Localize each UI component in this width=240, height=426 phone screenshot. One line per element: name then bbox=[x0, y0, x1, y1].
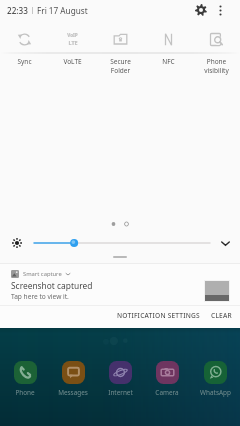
button[interactable]: Settings bbox=[191, 0, 211, 20]
staticText: Tap here to view it. bbox=[11, 292, 69, 301]
button[interactable]: Drag handle bbox=[113, 256, 127, 258]
button[interactable]: Phone bbox=[3, 361, 47, 397]
staticText: Smart capture bbox=[23, 270, 62, 278]
staticText: Phone bbox=[15, 388, 35, 397]
staticText: Phone visibility bbox=[204, 57, 229, 75]
button[interactable]: Sync bbox=[0, 29, 48, 49]
button[interactable]: Brightness slider bbox=[34, 235, 210, 251]
staticText: CLEAR bbox=[211, 311, 232, 320]
staticText: VoLTE bbox=[63, 57, 82, 66]
staticText: 22:33 bbox=[7, 5, 28, 16]
button[interactable]: NOTIFICATION SETTINGS bbox=[113, 308, 204, 323]
staticText: NOTIFICATION SETTINGS bbox=[117, 311, 200, 320]
staticText: Internet bbox=[108, 388, 133, 397]
staticText: Screenshot captured bbox=[11, 280, 93, 291]
staticText: Camera bbox=[155, 388, 179, 397]
staticText: VoIP bbox=[67, 32, 78, 38]
button[interactable]: NFC bbox=[144, 29, 192, 49]
staticText: Fri 17 August bbox=[37, 5, 88, 16]
staticText: WhatsApp bbox=[200, 388, 231, 397]
button[interactable]: VoLTE bbox=[48, 29, 96, 49]
button[interactable]: More options bbox=[211, 1, 229, 19]
button[interactable]: Brightness bbox=[0, 235, 34, 251]
staticText: Secure Folder bbox=[110, 57, 131, 75]
button[interactable]: CLEAR bbox=[207, 308, 236, 323]
staticText: LTE bbox=[68, 39, 78, 46]
button[interactable]: Messages bbox=[51, 361, 95, 397]
button[interactable]: Expand quick settings bbox=[210, 235, 240, 251]
button[interactable]: Phone visibility bbox=[192, 29, 240, 49]
button[interactable]: Internet bbox=[98, 361, 142, 397]
button[interactable]: Camera bbox=[145, 361, 189, 397]
button[interactable]: WhatsApp bbox=[193, 361, 237, 397]
staticText: Sync bbox=[17, 57, 32, 66]
button[interactable]: Secure Folder bbox=[96, 29, 144, 49]
button[interactable]: Screenshot captured bbox=[0, 279, 240, 305]
staticText: Messages bbox=[58, 388, 88, 397]
staticText: NFC bbox=[162, 57, 175, 66]
